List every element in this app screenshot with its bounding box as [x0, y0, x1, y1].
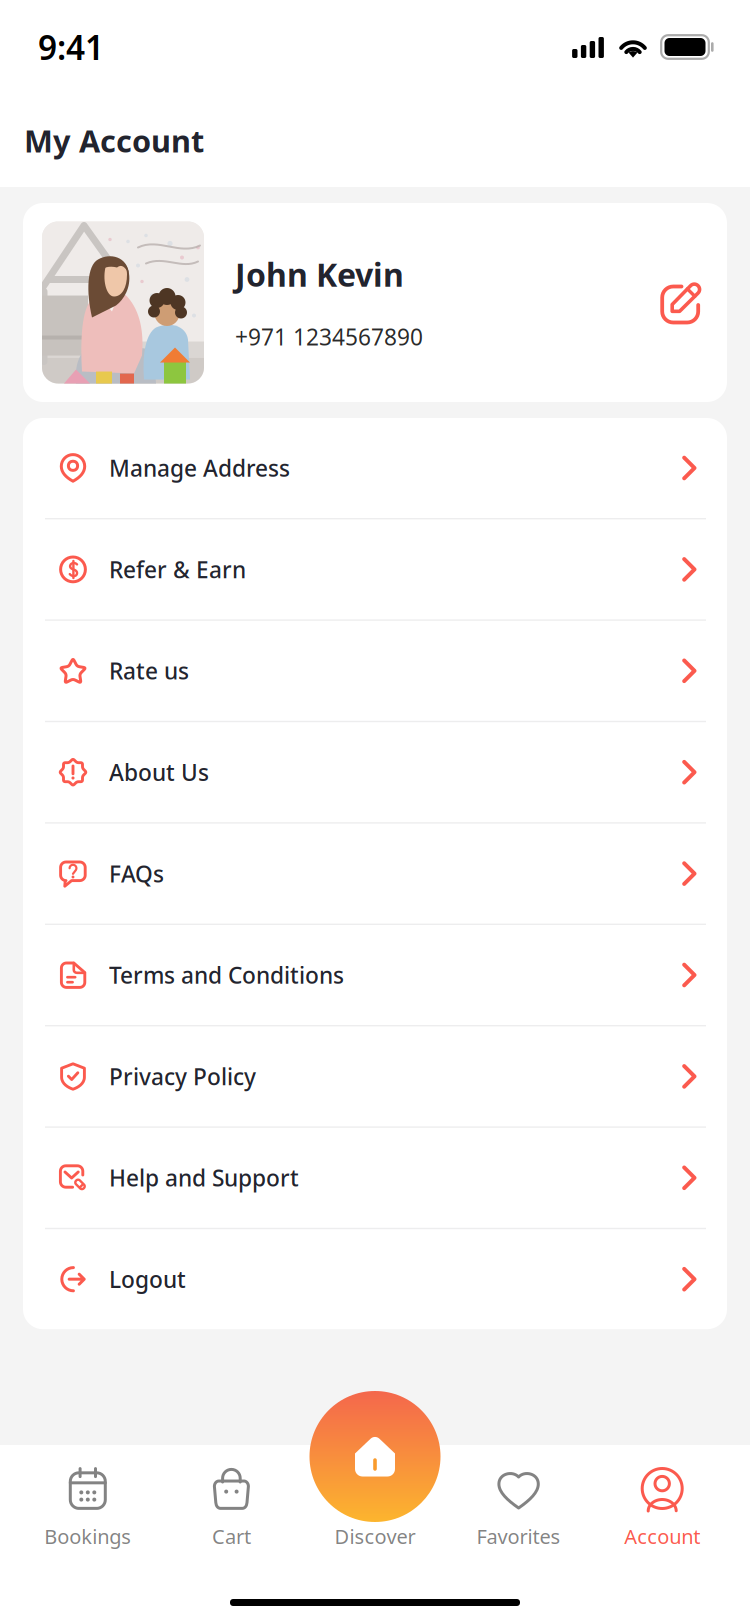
button[interactable]: About Us: [23, 722, 727, 822]
staticText: Refer & Earn: [109, 554, 246, 584]
button[interactable]: Edit profile: [660, 280, 704, 324]
staticText: John Kevin: [235, 253, 404, 296]
staticText: Bookings: [44, 1523, 131, 1550]
button[interactable]: Rate us: [23, 621, 727, 721]
staticText: FAQs: [109, 858, 164, 889]
staticText: +971 1234567890: [235, 322, 423, 352]
staticText: About Us: [109, 757, 209, 787]
staticText: Logout: [109, 1264, 186, 1294]
staticText: Cart: [212, 1523, 251, 1550]
staticText: 9:41: [38, 25, 104, 69]
staticText: Rate us: [109, 656, 189, 686]
button[interactable]: Terms and Conditions: [23, 925, 727, 1025]
button[interactable]: Bookings: [16, 1445, 160, 1550]
staticText: Help and Support: [109, 1163, 299, 1193]
staticText: Account: [624, 1523, 700, 1550]
button[interactable]: Privacy Policy: [23, 1026, 727, 1126]
staticText: Favorites: [477, 1523, 561, 1550]
button[interactable]: Logout: [23, 1229, 727, 1329]
staticText: Discover: [334, 1523, 415, 1550]
button[interactable]: FAQs: [23, 824, 727, 924]
staticText: My Account: [24, 120, 204, 161]
staticText: Manage Address: [109, 453, 290, 483]
staticText: Privacy Policy: [109, 1061, 256, 1091]
button[interactable]: Favorites: [447, 1445, 590, 1550]
button[interactable]: Discover: [303, 1445, 447, 1550]
button[interactable]: Manage Address: [23, 418, 727, 518]
button[interactable]: Cart: [160, 1445, 303, 1550]
button[interactable]: Account: [590, 1445, 734, 1550]
staticText: Terms and Conditions: [109, 960, 344, 990]
button[interactable]: Refer & Earn: [23, 519, 727, 619]
button[interactable]: Help and Support: [23, 1128, 727, 1228]
